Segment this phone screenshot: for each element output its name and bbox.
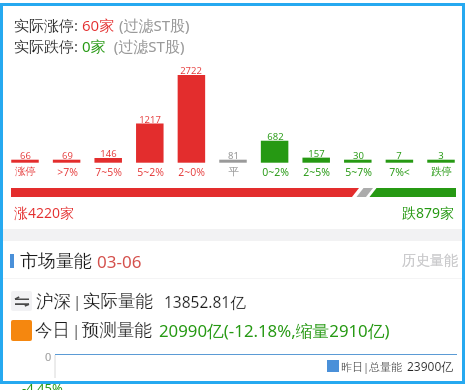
staticText: 3 (438, 149, 444, 162)
staticText: 69 (62, 149, 73, 162)
staticText: 157 (308, 147, 325, 160)
staticText: 81 (228, 149, 239, 162)
staticText: 60家 (82, 15, 115, 35)
staticText: 历史量能 (402, 252, 458, 270)
staticText: | (72, 320, 81, 340)
staticText: 2~0% (178, 165, 205, 179)
button[interactable]: 切换市场 (11, 291, 32, 311)
staticText: 0家 (82, 36, 106, 56)
staticText: 682 (267, 130, 284, 143)
staticText: 涨4220家 (14, 203, 75, 222)
staticText: 昨日|总量能 (341, 359, 403, 374)
staticText: 23900亿 (407, 358, 454, 374)
staticText: 今日 (35, 319, 70, 341)
staticText: 实际涨停: (14, 15, 82, 35)
staticText: 0 (45, 349, 52, 364)
staticText: 跌879家 (402, 203, 455, 222)
staticText: 5~2% (137, 165, 164, 179)
staticText: >7% (57, 165, 78, 179)
staticText: 30 (353, 149, 364, 162)
staticText: 146 (100, 147, 117, 160)
staticText: 2722 (180, 64, 202, 77)
staticText: 2~5% (303, 165, 330, 179)
staticText: (过滤ST股) (106, 36, 185, 56)
staticText: 市场量能 (20, 250, 92, 273)
staticText: 03-06 (97, 250, 142, 273)
staticText: 7%< (389, 165, 410, 179)
staticText: | (73, 291, 82, 311)
staticText: 66 (20, 149, 31, 162)
staticText: 5~7% (345, 165, 372, 179)
staticText: 实际量能 (83, 290, 153, 312)
staticText: 实际跌停: (14, 36, 82, 56)
staticText: -4.45% (22, 379, 63, 390)
staticText: 沪深 (36, 290, 71, 312)
staticText: 平 (228, 165, 239, 178)
staticText: 涨停 (15, 165, 36, 178)
staticText: 跌停 (431, 165, 452, 178)
staticText: 1217 (139, 113, 161, 126)
staticText: 20990亿(-12.18%,缩量2910亿) (159, 319, 390, 341)
staticText: 7 (396, 149, 402, 162)
staticText: 7~5% (95, 165, 122, 179)
staticText: 0~2% (262, 165, 289, 179)
staticText: 预测量能 (82, 319, 152, 341)
button[interactable]: 历史量能 (388, 243, 462, 279)
staticText: 13852.81亿 (164, 291, 246, 312)
staticText: (过滤ST股) (115, 15, 190, 35)
